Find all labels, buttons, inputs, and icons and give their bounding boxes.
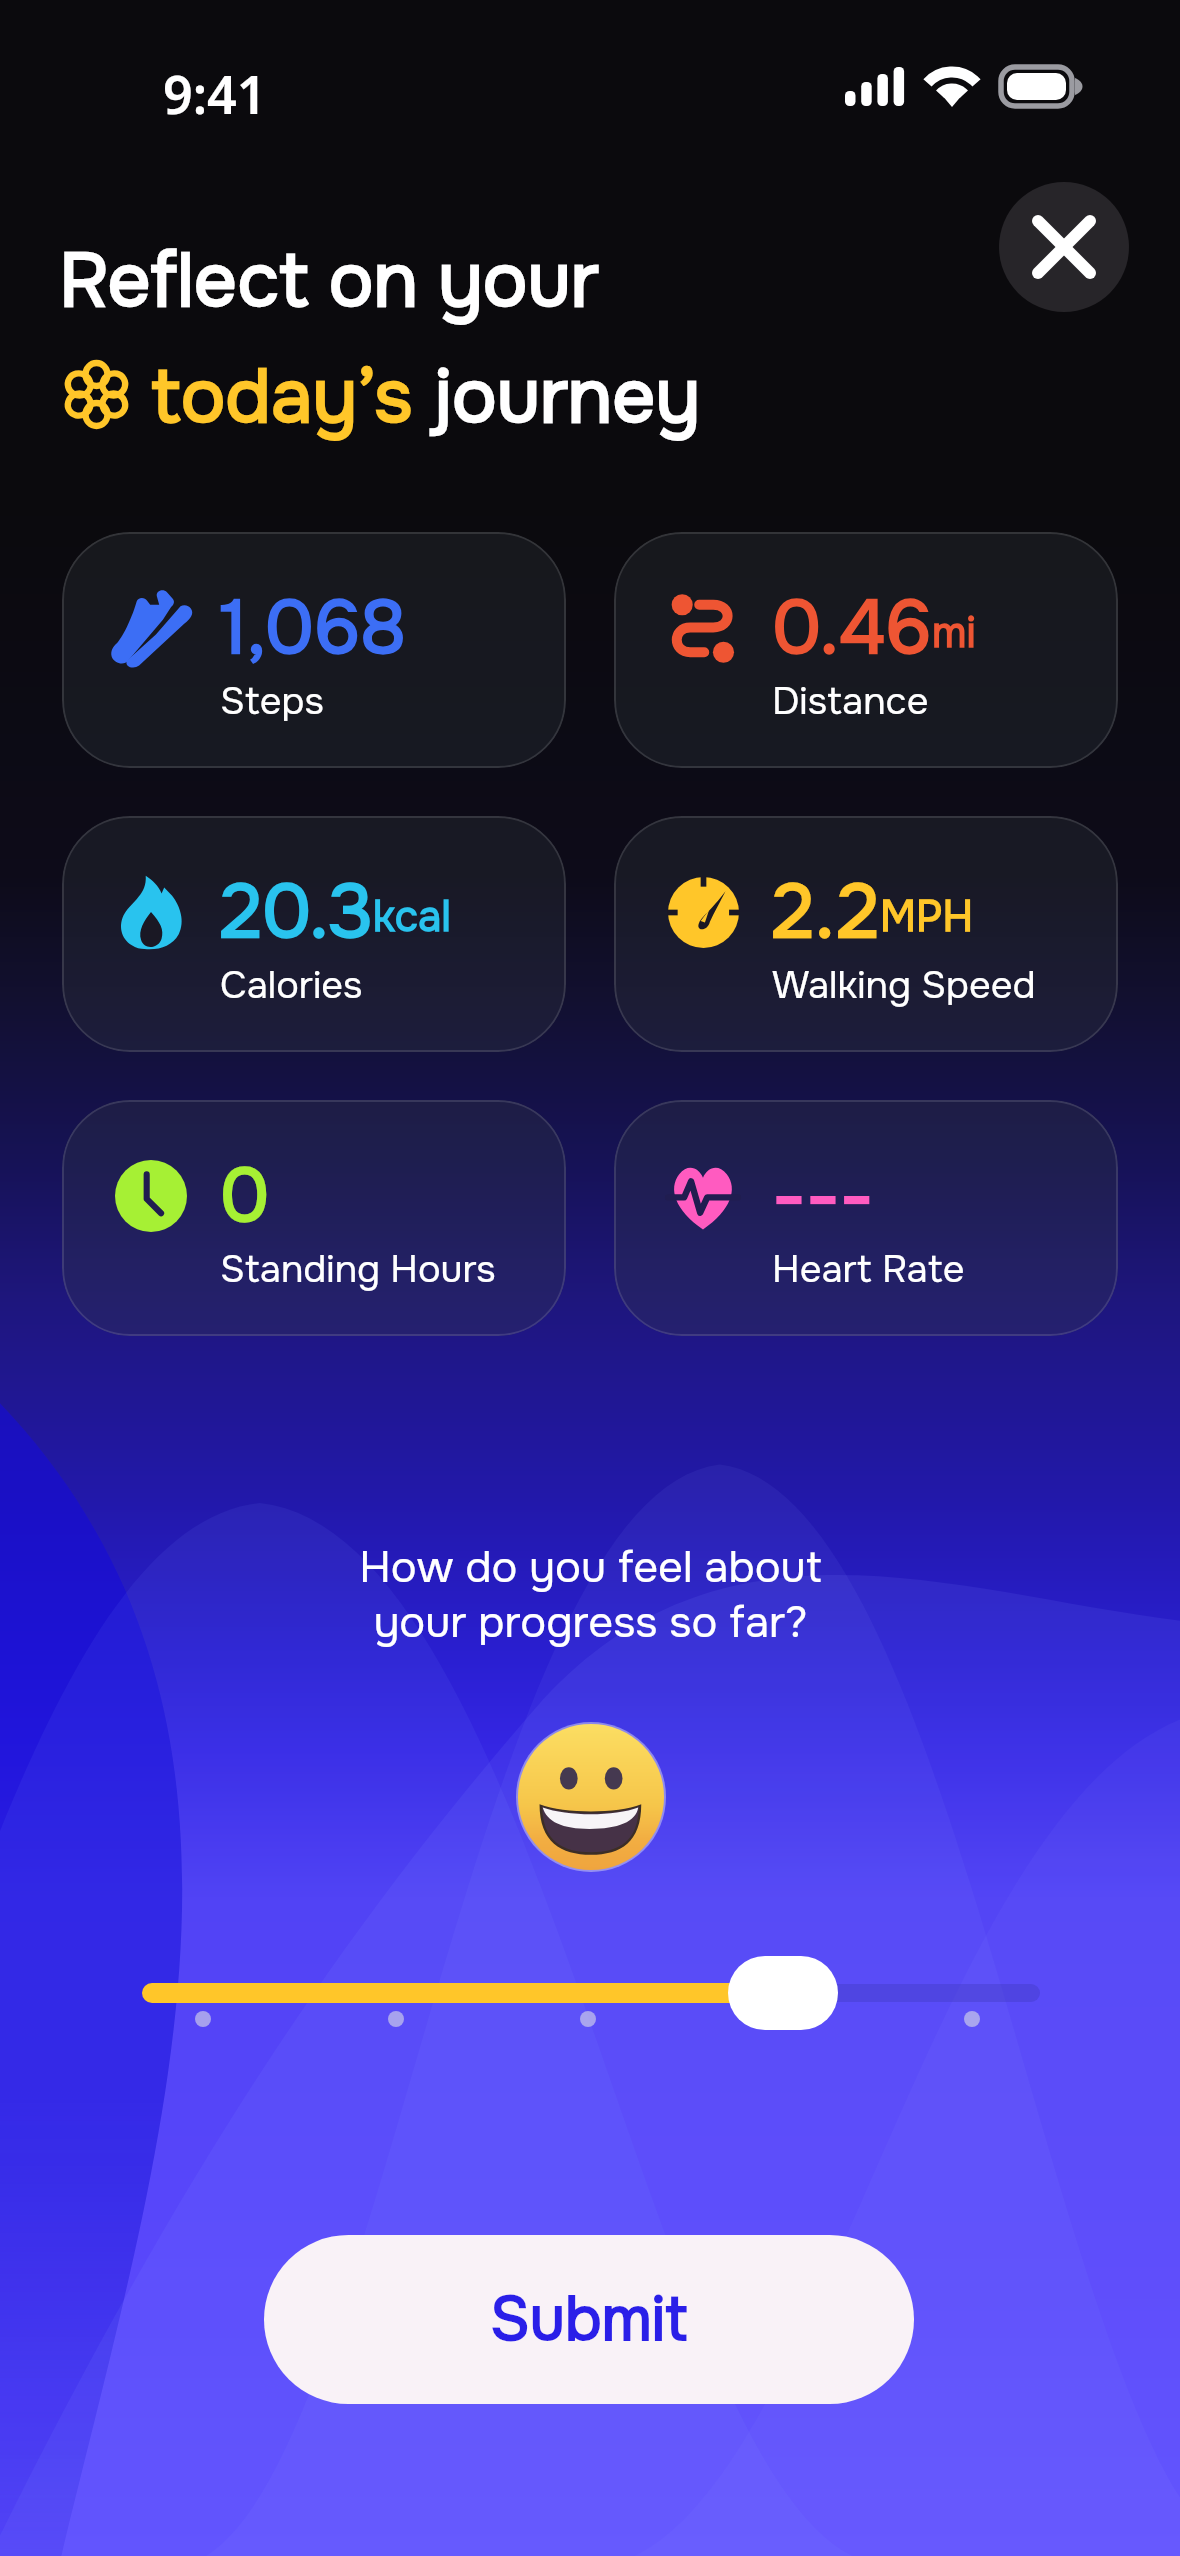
staticText: ---: [772, 1149, 874, 1243]
button[interactable]: ---: [614, 1100, 1118, 1336]
staticText: Walking Speed: [772, 961, 1036, 1009]
staticText: 1,068: [220, 581, 407, 675]
button[interactable]: 0.46: [614, 532, 1118, 768]
staticText: Reflect on your: [59, 233, 599, 329]
staticText: 20.3: [220, 865, 373, 959]
staticText: Submit: [490, 2281, 688, 2359]
staticText: 0: [220, 1149, 270, 1243]
button[interactable]: 1,068: [62, 532, 566, 768]
staticText: 9:41: [163, 58, 267, 129]
staticText: 2.2: [772, 865, 880, 959]
staticText: Distance: [772, 677, 929, 725]
staticText: journey: [433, 349, 700, 445]
staticText: 20.3: [220, 865, 373, 959]
staticText: Steps: [220, 677, 324, 725]
staticText: ---: [772, 1149, 874, 1243]
button[interactable]: 2.2: [614, 816, 1118, 1052]
staticText: 0.46: [772, 581, 932, 675]
staticText: How do you feel about your progress so f…: [359, 1540, 822, 1650]
staticText: 2.2: [772, 865, 880, 959]
button[interactable]: Close: [999, 182, 1129, 312]
staticText: 0: [220, 1149, 270, 1243]
staticText: 1,068: [220, 581, 407, 675]
staticText: Standing Hours: [220, 1245, 496, 1293]
staticText: Heart Rate: [772, 1245, 965, 1293]
staticText: Calories: [220, 961, 363, 1009]
button[interactable]: 0: [62, 1100, 566, 1336]
staticText: 0.46: [772, 581, 932, 675]
staticText: MPH: [880, 890, 973, 944]
staticText: kcal: [373, 890, 451, 944]
button[interactable]: 20.3: [62, 816, 566, 1052]
button[interactable]: Submit: [264, 2235, 914, 2404]
staticText: mi: [932, 606, 976, 660]
staticText: today’s: [151, 349, 433, 445]
